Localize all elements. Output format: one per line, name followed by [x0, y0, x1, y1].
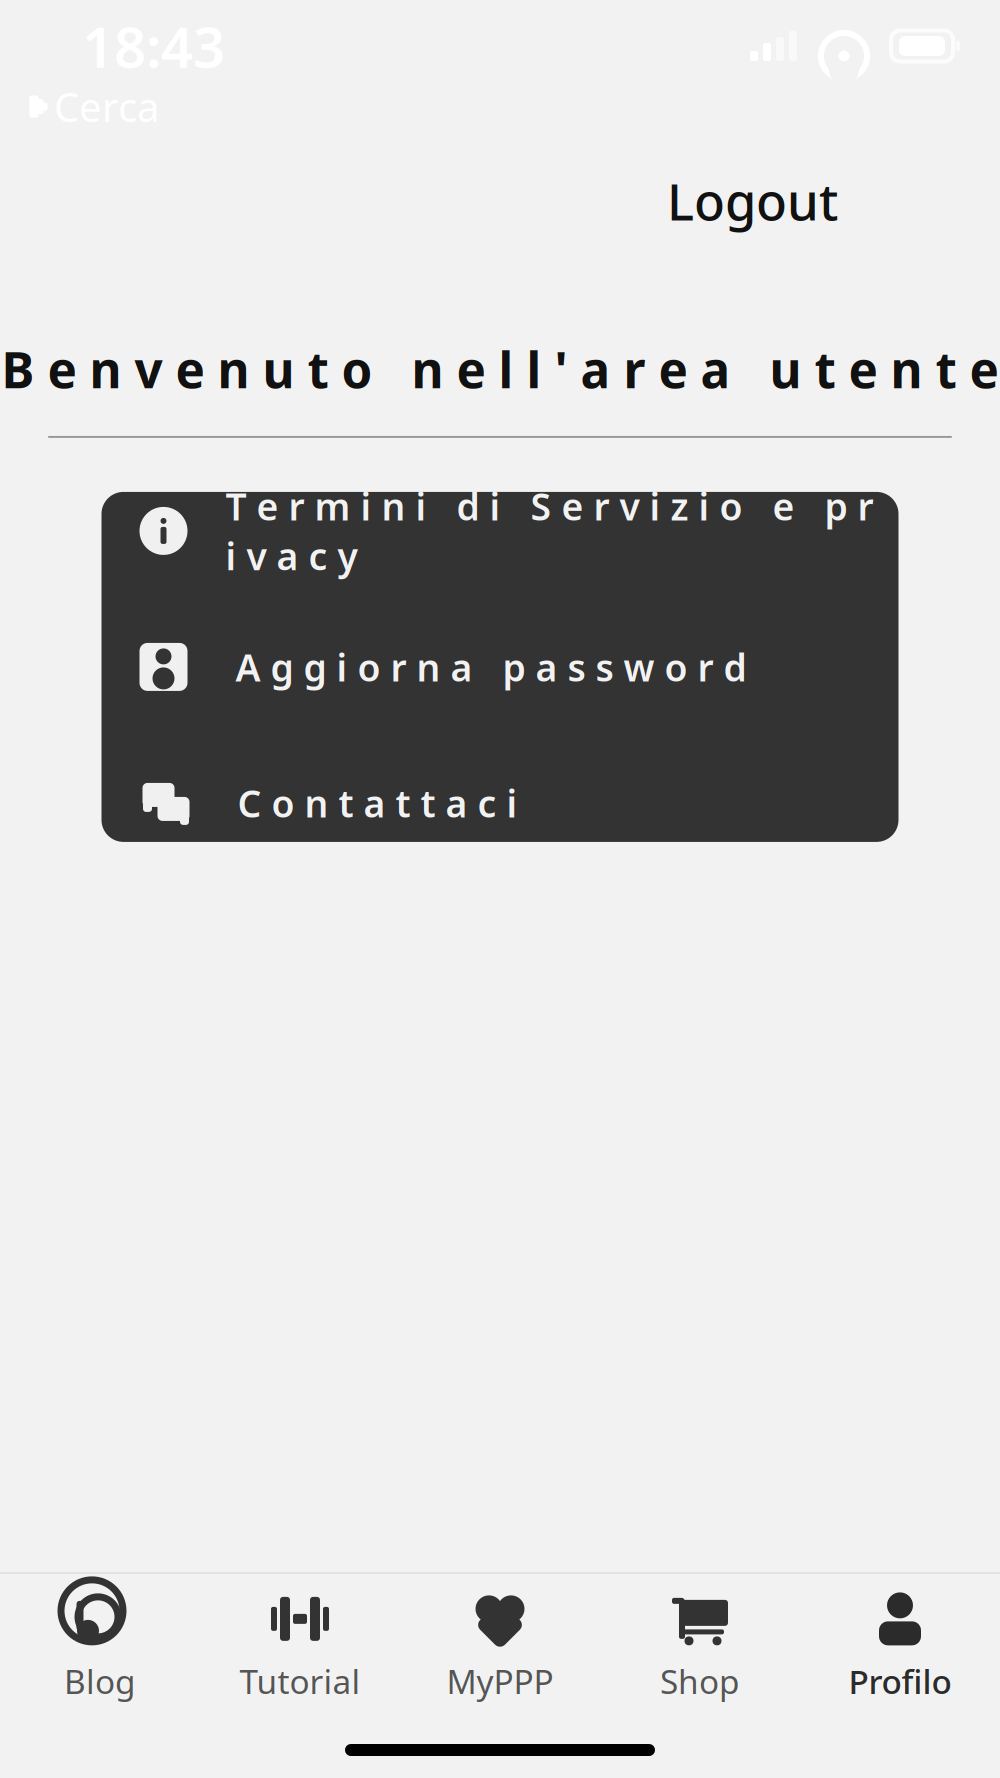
staticText: Tutorial [239, 1659, 360, 1703]
button[interactable]: Blog [0, 1574, 200, 1722]
staticText: T e r m i n i d i S e r v i z i o e p r … [225, 481, 873, 580]
button[interactable]: Tutorial [200, 1574, 400, 1722]
staticText: Logout [667, 167, 838, 234]
staticText: A g g i o r n a p a s s w o r d [235, 642, 746, 692]
button[interactable]: C o n t a t t a c i [101, 769, 898, 837]
staticText: Profilo [848, 1659, 951, 1703]
button[interactable]: T e r m i n i d i S e r v i z i o e p r … [101, 497, 898, 565]
button[interactable]: A g g i o r n a p a s s w o r d [101, 633, 898, 701]
button[interactable]: Shop [600, 1574, 800, 1722]
button[interactable]: Profilo [800, 1574, 1000, 1722]
staticText: Blog [64, 1659, 136, 1703]
button[interactable]: MyPPP [400, 1574, 600, 1722]
staticText: MyPPP [446, 1659, 553, 1703]
staticText: Shop [660, 1659, 740, 1703]
staticText: B e n v e n u t o n e l l ' a r e a u t … [1, 336, 998, 402]
button[interactable]: Logout [653, 157, 852, 244]
staticText: 18:43 [82, 9, 225, 83]
staticText: Cerca [54, 80, 159, 133]
staticText: C o n t a t t a c i [237, 778, 517, 828]
